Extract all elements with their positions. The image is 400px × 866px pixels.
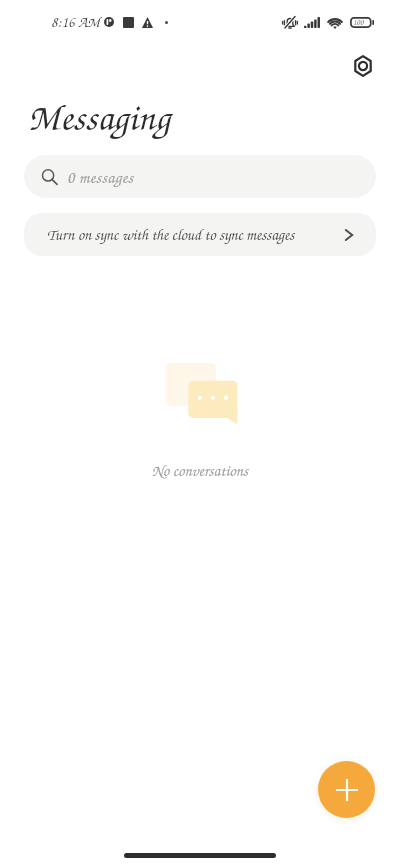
staticText: No conversations <box>152 460 249 481</box>
button[interactable]: New conversation <box>318 761 375 818</box>
staticText: Messaging <box>28 91 171 141</box>
button[interactable]: Settings <box>341 44 385 88</box>
staticText: Turn on sync with the cloud to sync mess… <box>47 224 295 245</box>
staticText: 100 <box>353 17 364 28</box>
button[interactable]: Turn on sync with the cloud to sync mess… <box>24 213 376 256</box>
staticText: 8:16 AM <box>51 12 100 32</box>
staticText: 0 messages <box>67 166 134 188</box>
button[interactable]: 0 messages <box>24 155 376 198</box>
